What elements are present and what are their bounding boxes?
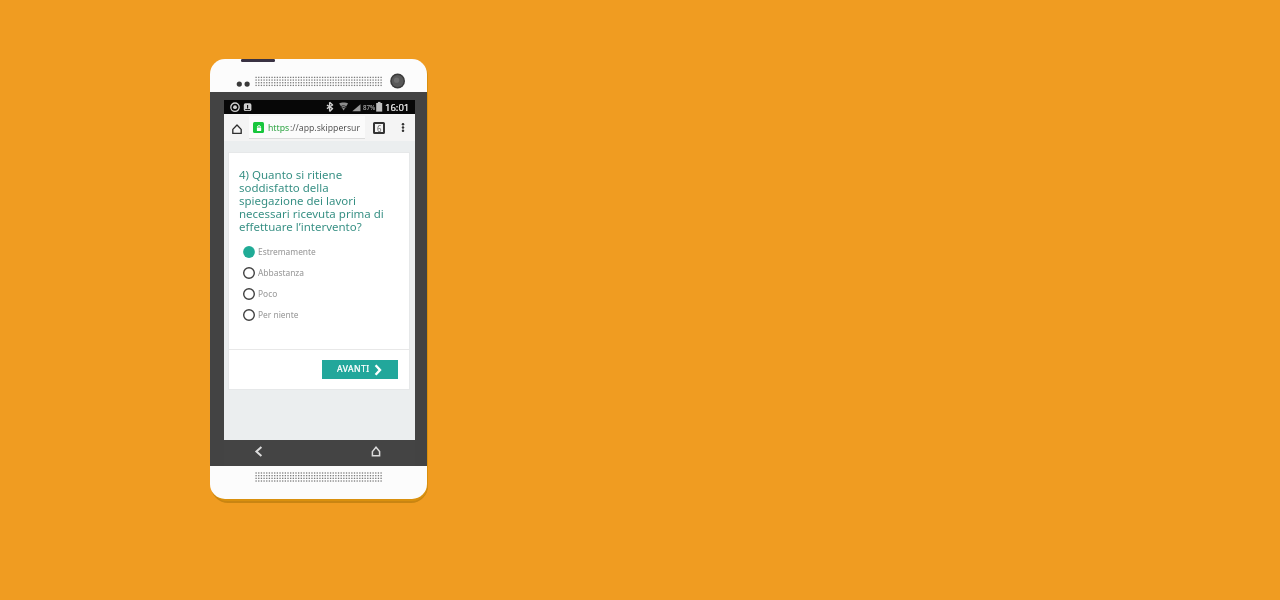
staticText: ://app.skippersur: [290, 122, 361, 134]
button[interactable]: More options: [393, 114, 412, 141]
staticText: Abbastanza: [258, 267, 304, 278]
staticText: AVANTI: [337, 363, 370, 375]
staticText: Per niente: [258, 309, 299, 320]
button[interactable]: https: [249, 116, 365, 139]
staticText: https: [268, 122, 290, 134]
staticText: 16:01: [385, 101, 410, 114]
staticText: Estremamente: [258, 246, 316, 257]
button[interactable]: Abbastanza: [228, 262, 410, 283]
button[interactable]: Back: [244, 440, 272, 462]
button[interactable]: Home: [225, 115, 248, 142]
staticText: 4) Quanto si ritiene soddisfatto della s…: [239, 167, 389, 235]
button[interactable]: AVANTI: [322, 360, 398, 379]
button[interactable]: Tabs: [368, 114, 389, 141]
staticText: 87%: [363, 103, 376, 111]
button[interactable]: Estremamente: [228, 241, 410, 262]
button[interactable]: Home: [362, 440, 390, 462]
staticText: Poco: [258, 288, 278, 299]
button[interactable]: Per niente: [228, 304, 410, 325]
staticText: 6: [377, 123, 382, 134]
button[interactable]: Poco: [228, 283, 410, 304]
